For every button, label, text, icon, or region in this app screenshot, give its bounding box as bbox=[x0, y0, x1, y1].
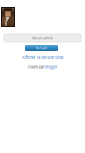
button[interactable]: Afficher la version Web bbox=[22, 55, 63, 60]
staticText: Aucun article bbox=[32, 36, 53, 40]
staticText: Fourni par bbox=[28, 65, 44, 69]
staticText: Blogger bbox=[45, 65, 57, 69]
staticText: Accueil bbox=[35, 46, 47, 50]
button[interactable]: Accueil bbox=[25, 45, 58, 51]
button[interactable]: Blogger bbox=[45, 65, 57, 69]
staticText: Afficher la version Web bbox=[22, 55, 63, 60]
